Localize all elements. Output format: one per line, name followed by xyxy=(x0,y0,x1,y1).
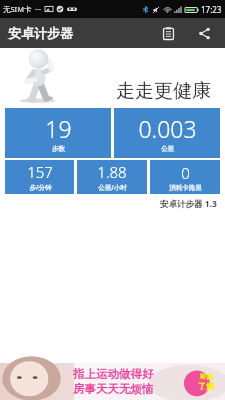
staticText: 步/分钟 xyxy=(29,183,52,192)
button[interactable]: Advertisement xyxy=(0,363,225,400)
button[interactable]: 1.88 xyxy=(77,160,147,194)
staticText: 0.003 xyxy=(138,113,197,144)
button[interactable]: Share xyxy=(189,18,219,48)
staticText: 17:23 xyxy=(201,4,222,15)
staticText: 公里/小时 xyxy=(98,183,127,192)
button[interactable]: 0 xyxy=(150,160,220,194)
staticText: 安卓计步器 xyxy=(8,25,73,41)
staticText: 走走更健康 xyxy=(116,79,211,103)
staticText: 1.88 xyxy=(97,162,127,182)
staticText: 19 xyxy=(45,113,72,144)
staticText: 房事天天无烦恼 xyxy=(73,382,154,396)
staticText: 公里 xyxy=(161,145,174,153)
button[interactable]: 157 xyxy=(5,160,74,194)
staticText: 了解 xyxy=(198,381,214,391)
staticText: 消耗卡路里 xyxy=(169,184,202,192)
staticText: 安卓计步器 1.3 xyxy=(160,198,217,210)
staticText: ··· xyxy=(35,4,42,14)
staticText: 157 xyxy=(27,162,53,182)
staticText: 无SIM卡 xyxy=(3,4,32,14)
staticText: 步数 xyxy=(52,145,65,153)
button[interactable]: 0.003 xyxy=(114,108,220,158)
button[interactable]: 19 xyxy=(5,108,111,158)
staticText: 0 xyxy=(181,163,190,183)
staticText: 指上运动做得好 xyxy=(73,367,154,381)
staticText: 即刻 xyxy=(200,373,213,381)
button[interactable]: History xyxy=(153,18,183,48)
